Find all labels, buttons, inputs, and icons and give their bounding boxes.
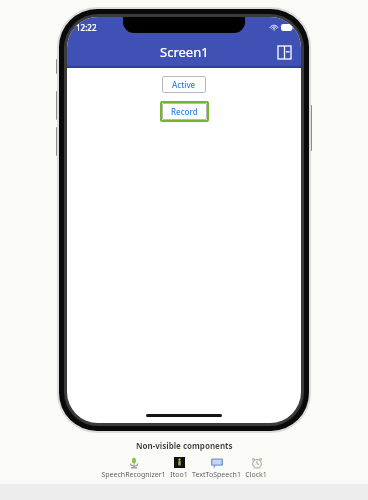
- staticText: SpeechRecognizer1: [101, 470, 166, 480]
- button[interactable]: TextToSpeech1: [192, 456, 241, 480]
- staticText: Clock1: [245, 470, 267, 480]
- button[interactable]: Itoo1: [170, 456, 188, 480]
- staticText: Screen1: [160, 43, 209, 61]
- staticText: Record: [171, 106, 198, 117]
- staticText: 12:22: [76, 22, 97, 33]
- staticText: TextToSpeech1: [192, 470, 241, 480]
- button[interactable]: SpeechRecognizer1: [101, 456, 166, 480]
- button[interactable]: Clock1: [245, 456, 267, 480]
- staticText: Non-visible components: [136, 440, 233, 451]
- button[interactable]: Layout preview: [274, 42, 294, 62]
- button[interactable]: Record: [162, 103, 207, 120]
- button[interactable]: Active: [162, 76, 206, 93]
- staticText: Itoo1: [170, 470, 188, 480]
- staticText: Active: [172, 79, 196, 90]
